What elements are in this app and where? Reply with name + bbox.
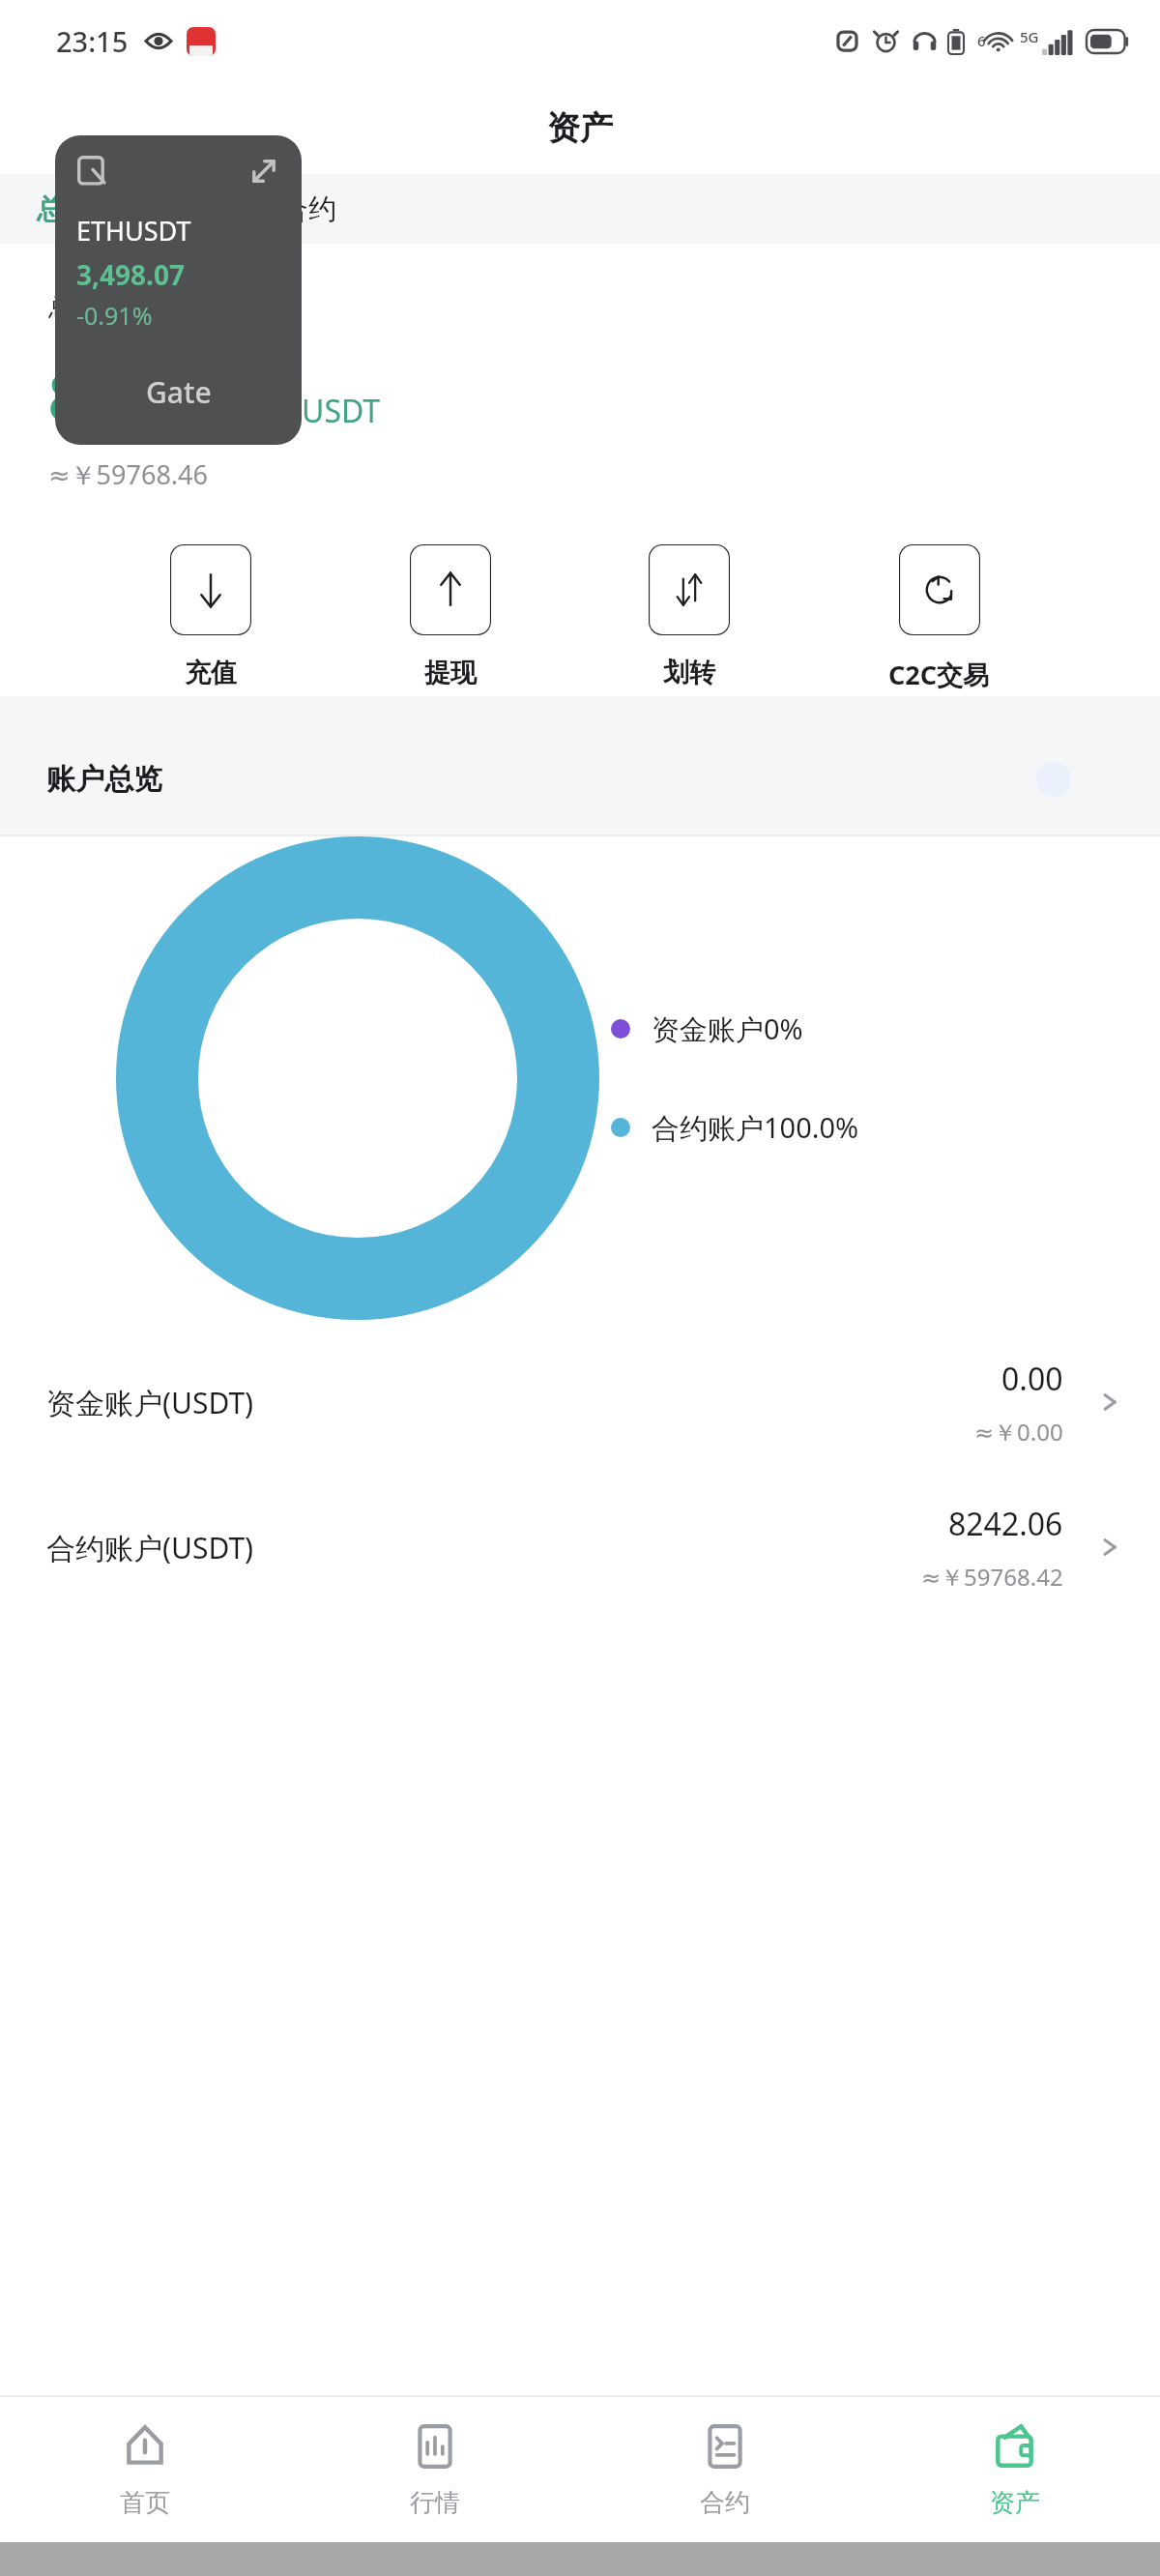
button[interactable]: 划转	[637, 541, 741, 693]
button[interactable]: 行情	[290, 2397, 580, 2542]
other: Pin	[76, 155, 109, 188]
staticText: 0.00	[1001, 1358, 1063, 1400]
staticText: 合约账户(USDT)	[46, 1528, 254, 1567]
staticText: 资产	[547, 107, 613, 149]
staticText: ≈￥59768.42	[921, 1561, 1063, 1593]
staticText: ≈￥59768.46	[48, 456, 208, 492]
button[interactable]: 充值	[159, 541, 263, 693]
button[interactable]: 资产	[870, 2397, 1160, 2542]
other: Expand	[247, 155, 280, 188]
staticText: 合约	[700, 2487, 750, 2519]
staticText: USDT	[302, 390, 381, 432]
staticText: 充值	[185, 657, 237, 689]
staticText: 资金账户0%	[652, 1010, 803, 1048]
button[interactable]: 资金	[151, 186, 222, 233]
staticText: -0.91%	[76, 299, 153, 332]
staticText: 合约	[280, 191, 336, 227]
button[interactable]: 合约账户(USDT)	[0, 1475, 1160, 1620]
staticText: 账户总览	[46, 761, 162, 798]
button[interactable]: 合约	[273, 186, 344, 233]
staticText: C2C交易	[888, 657, 990, 692]
staticText: 总览	[37, 191, 93, 227]
button[interactable]: 总览	[29, 186, 101, 233]
staticText: 资金账户(USDT)	[46, 1383, 254, 1422]
button[interactable]: 合约	[580, 2397, 870, 2542]
button[interactable]: 资金账户(USDT)	[0, 1330, 1160, 1475]
staticText: 3,498.07	[76, 256, 185, 293]
staticText: ≈￥0.00	[974, 1416, 1063, 1448]
button[interactable]: C2C交易	[877, 541, 1001, 696]
staticText: 8242.06	[948, 1503, 1063, 1545]
button[interactable]: Pin	[55, 135, 302, 445]
staticText: 6	[977, 31, 986, 50]
staticText: 划转	[663, 657, 715, 689]
staticText: 合约账户100.0%	[652, 1108, 859, 1147]
staticText: 首页	[120, 2487, 170, 2519]
staticText: 提现	[424, 657, 477, 689]
staticText: ETHUSDT	[76, 213, 191, 249]
staticText: 5G	[1020, 27, 1039, 46]
button[interactable]: 首页	[0, 2397, 290, 2542]
staticText: 资产	[990, 2487, 1040, 2519]
staticText: Gate	[146, 372, 212, 412]
staticText: 8242.07	[48, 352, 286, 439]
button[interactable]: 提现	[398, 541, 503, 693]
staticText: 总资产 (USDT)	[48, 289, 210, 324]
staticText: 资金	[159, 191, 215, 227]
staticText: 行情	[410, 2487, 460, 2519]
staticText: 23:15	[56, 22, 129, 60]
